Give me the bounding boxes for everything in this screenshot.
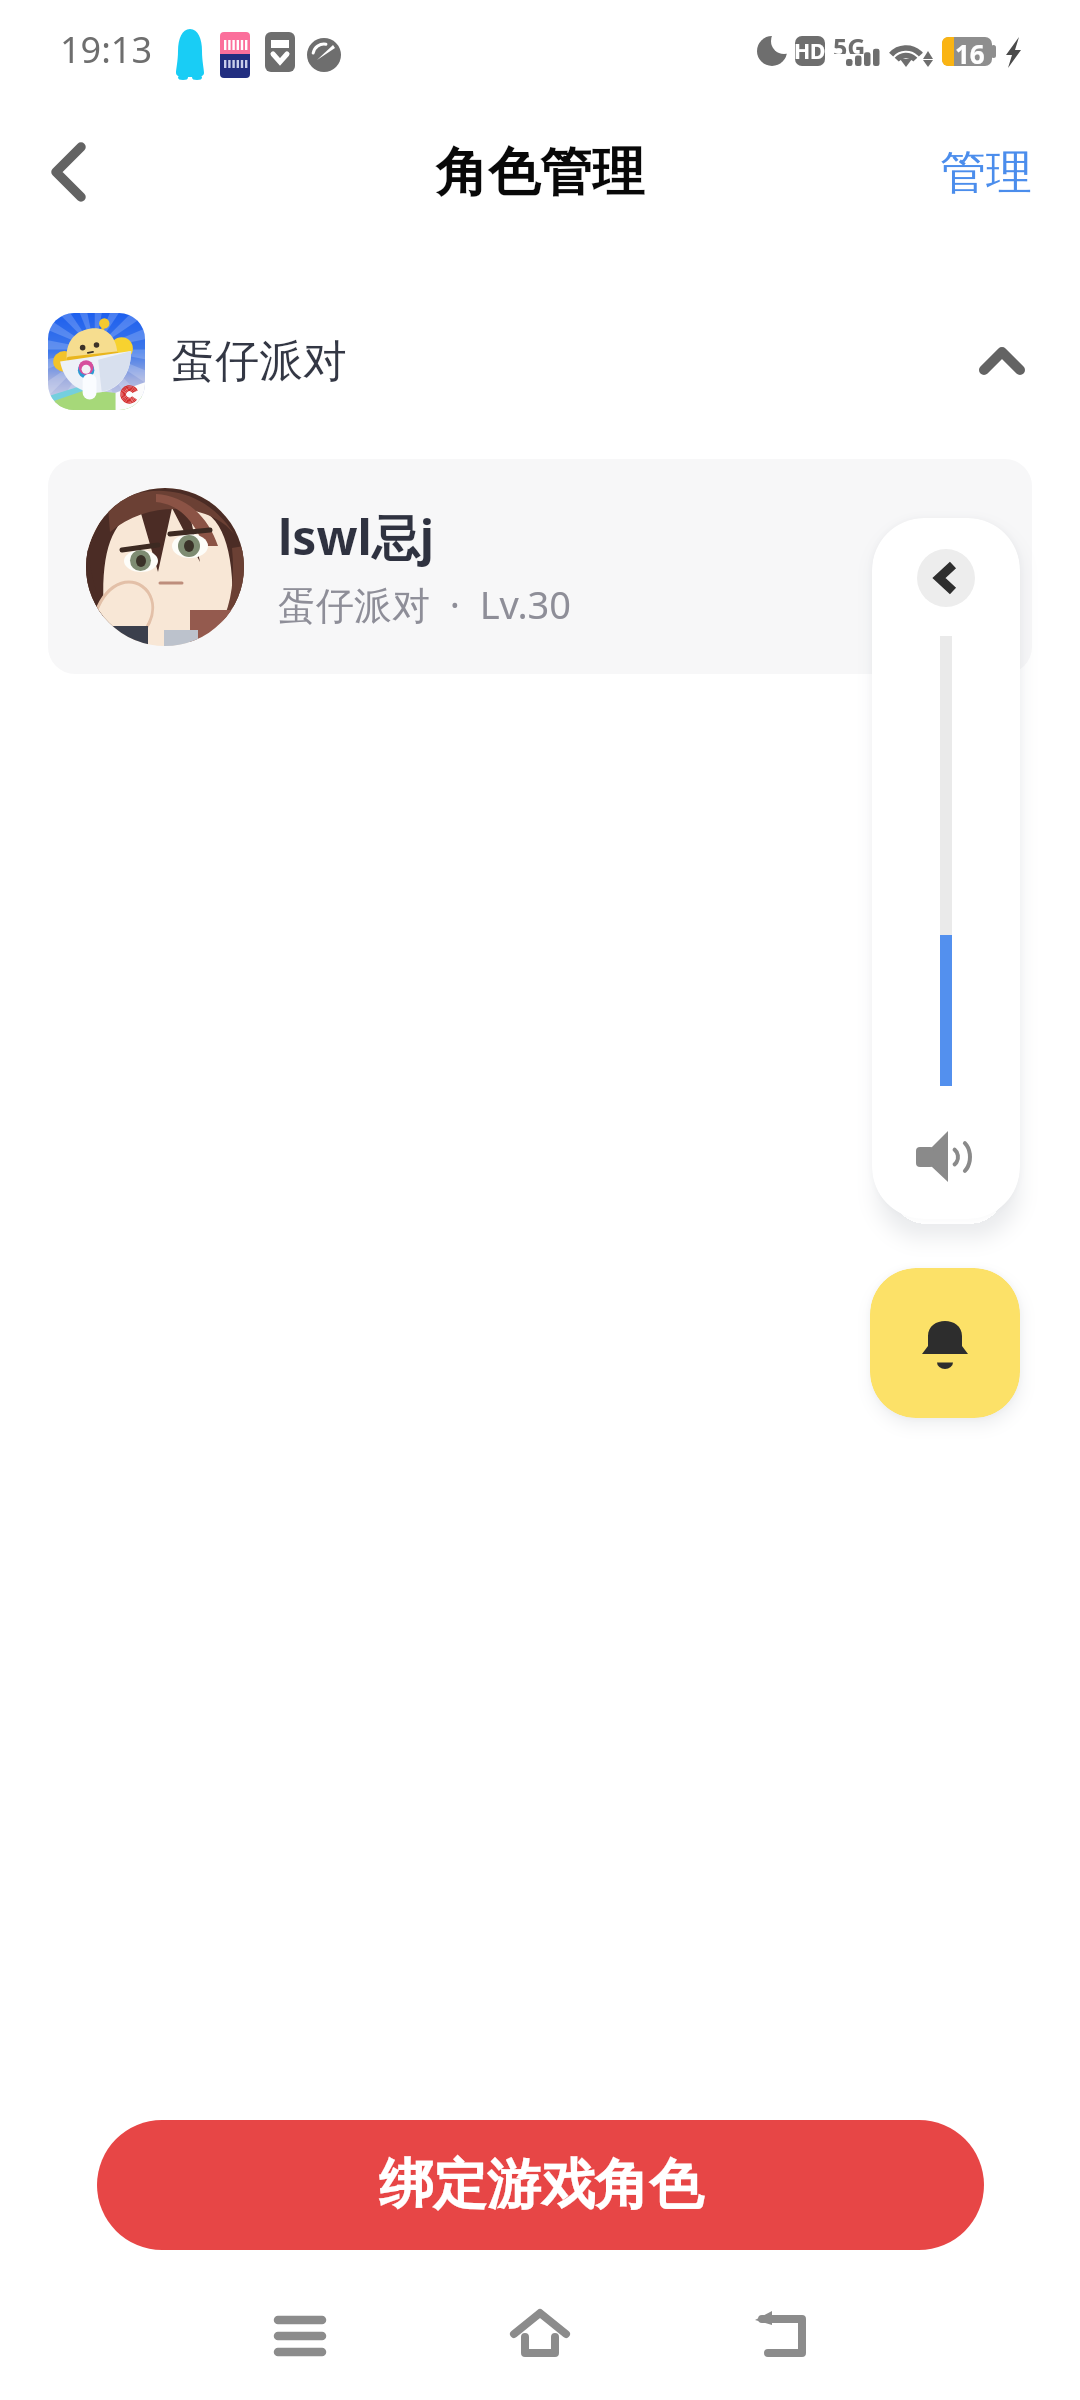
button[interactable]: Volume [911, 1122, 981, 1192]
staticText: HD [794, 37, 826, 66]
staticText: 蛋仔派对 [171, 334, 347, 389]
button[interactable]: Collapse [946, 305, 1058, 417]
button[interactable]: 蛋仔派对 [0, 295, 1080, 427]
staticText: 19:13 [60, 25, 153, 74]
button[interactable]: 绑定游戏角色 [97, 2120, 984, 2250]
staticText: 角色管理 [436, 140, 644, 206]
staticText: 5G [833, 30, 866, 54]
staticText: 管理 [940, 144, 1032, 202]
staticText: 16 [955, 36, 985, 66]
button[interactable]: Home [485, 2281, 595, 2391]
button[interactable]: Notifications [870, 1268, 1020, 1418]
button[interactable]: Back [13, 110, 123, 236]
button[interactable]: lswl忌j [48, 459, 1032, 674]
staticText: 蛋仔派对 · Lv.30 [278, 578, 572, 630]
button[interactable]: 管理 [892, 118, 1080, 228]
staticText: lswl忌j [278, 504, 435, 570]
button[interactable]: Expand volume panel [917, 549, 975, 607]
staticText: 绑定游戏角色 [379, 2151, 703, 2219]
button[interactable]: Recent apps [245, 2281, 355, 2391]
button[interactable]: Back [727, 2281, 837, 2391]
